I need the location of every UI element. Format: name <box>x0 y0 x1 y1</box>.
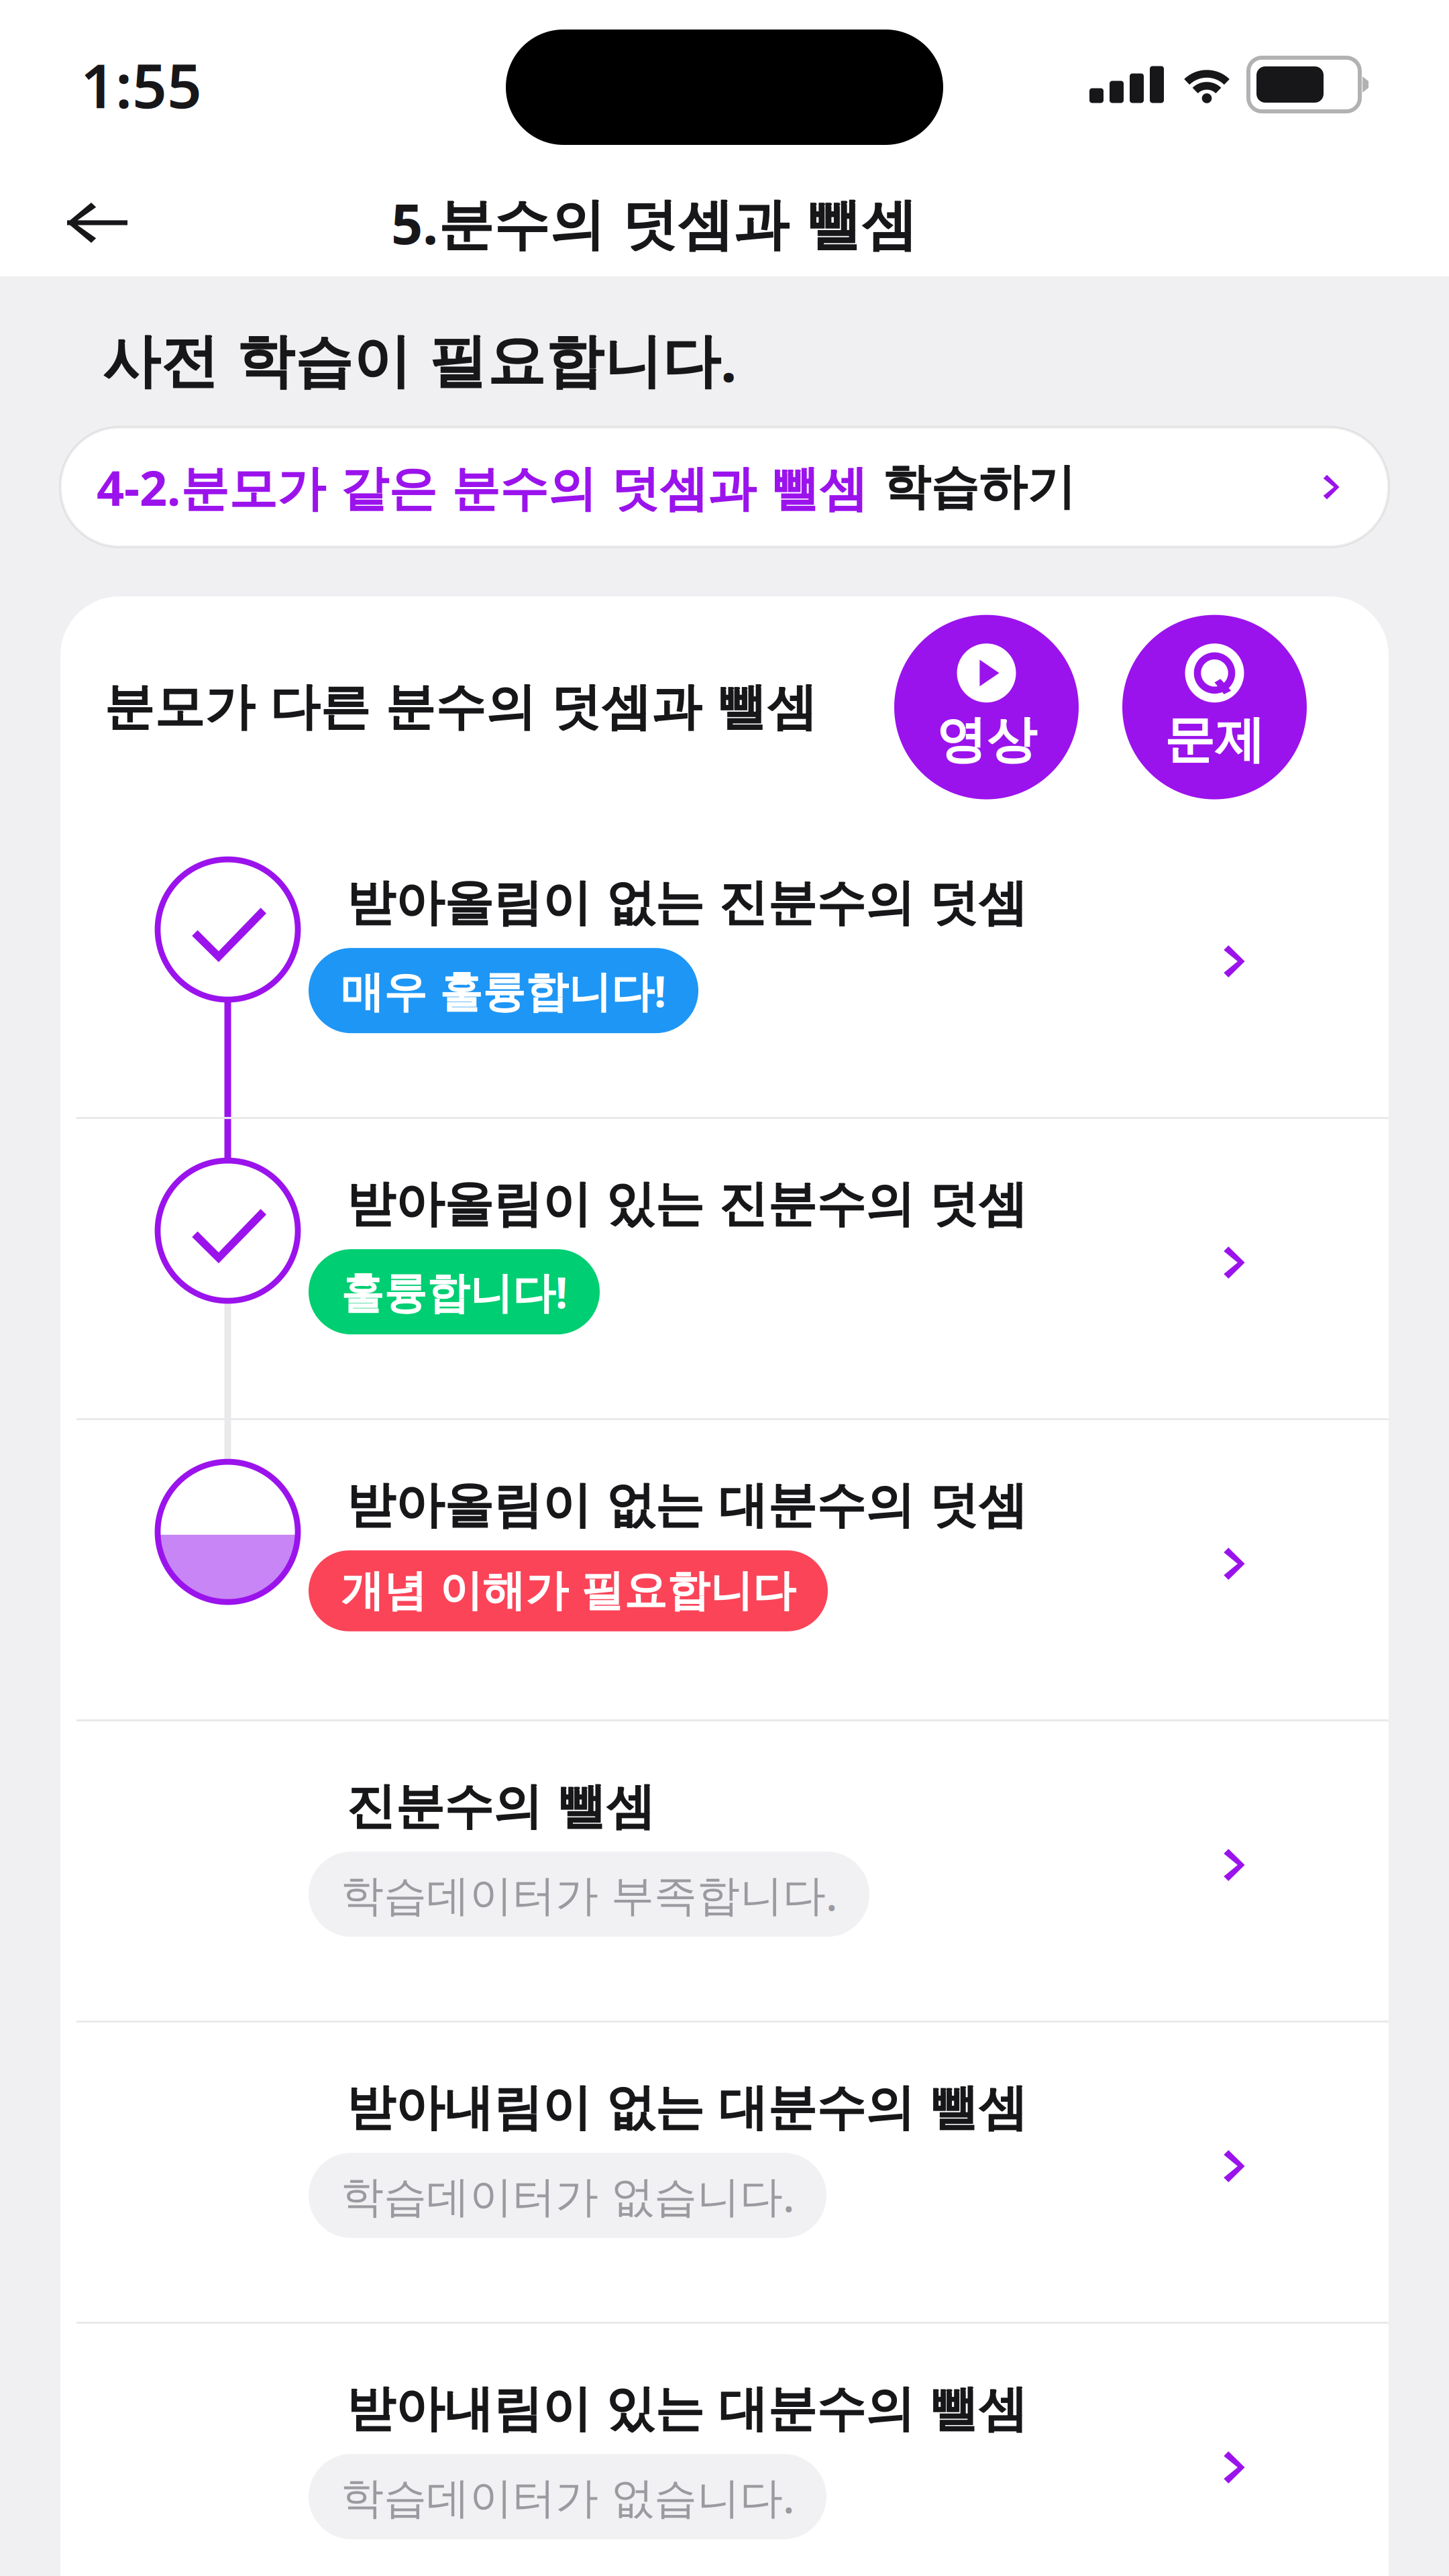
staticText: 영상 <box>936 709 1037 771</box>
staticText: 진분수의 뺄셈 <box>346 1776 655 1837</box>
button[interactable]: 받아올림이 있는 진분수의 덧셈 <box>60 1119 1389 1418</box>
staticText: 1:55 <box>80 44 202 125</box>
staticText: 매우 훌륭합니다! <box>341 962 666 1019</box>
staticText: 받아올림이 없는 진분수의 덧셈 <box>346 873 1027 933</box>
staticText: 훌륭합니다! <box>341 1263 568 1320</box>
button[interactable]: 받아올림이 없는 대분수의 덧셈 <box>60 1420 1389 1719</box>
button[interactable]: Back <box>0 161 168 284</box>
staticText: 개념 이해가 필요합니다 <box>341 1565 796 1617</box>
button[interactable]: 받아내림이 없는 대분수의 뺄셈 <box>60 2023 1389 2322</box>
button[interactable]: 영상 <box>894 615 1079 799</box>
staticText: 4-2.분모가 같은 분수의 덧셈과 뺄셈 <box>97 455 867 519</box>
button[interactable]: 4-2.분모가 같은 분수의 덧셈과 뺄셈 <box>60 427 1389 547</box>
staticText: 학습데이터가 부족합니다. <box>341 1866 837 1923</box>
button[interactable]: 진분수의 뺄셈 <box>60 1721 1389 2021</box>
staticText: 받아올림이 있는 진분수의 덧셈 <box>346 1174 1027 1234</box>
staticText: 학습데이터가 없습니다. <box>341 2167 794 2224</box>
staticText: 문제 <box>1164 709 1265 771</box>
staticText: 분모가 다른 분수의 덧셈과 뺄셈 <box>104 676 817 738</box>
button[interactable]: 문제 <box>1122 615 1307 799</box>
button[interactable]: 받아내림이 있는 대분수의 뺄셈 <box>60 2324 1389 2576</box>
staticText: 5.분수의 덧셈과 뺄셈 <box>391 186 917 260</box>
staticText: 받아내림이 있는 대분수의 뺄셈 <box>346 2379 1027 2439</box>
staticText: 받아올림이 없는 대분수의 덧셈 <box>346 1475 1027 1536</box>
button[interactable]: 받아올림이 없는 진분수의 덧셈 <box>60 818 1389 1117</box>
staticText: 받아내림이 없는 대분수의 뺄셈 <box>346 2078 1027 2138</box>
staticText: 학습하기 <box>867 457 1075 517</box>
staticText: 학습데이터가 없습니다. <box>341 2468 794 2525</box>
staticText: 사전 학습이 필요합니다. <box>102 321 737 398</box>
